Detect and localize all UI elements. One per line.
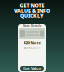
staticText: Series 2017	[23, 46, 40, 50]
staticText: Get Value	[23, 66, 41, 71]
staticText: $20 Note	[23, 40, 40, 45]
staticText: VALUE & INFO	[14, 7, 50, 14]
staticText: GET NOTE	[19, 2, 44, 9]
staticText: Note Details	[23, 24, 41, 28]
button[interactable]: Get Value	[20, 66, 44, 71]
staticText: QUICKLY	[20, 12, 44, 19]
